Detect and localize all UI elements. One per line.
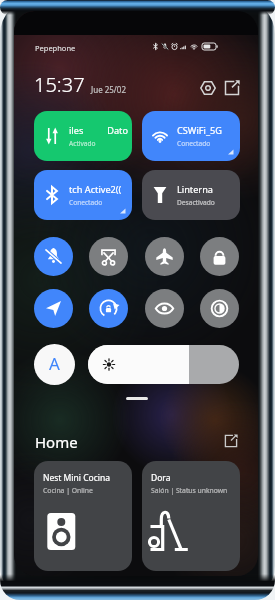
staticText: iles Dato bbox=[69, 124, 128, 137]
staticText: Dora bbox=[151, 472, 171, 484]
staticText: Nest Mini Cocina bbox=[43, 472, 110, 484]
button[interactable]: Settings bbox=[198, 78, 218, 98]
button[interactable]: Edit home bbox=[222, 432, 240, 450]
button[interactable]: Silence bbox=[34, 237, 73, 276]
staticText: Conectado bbox=[69, 198, 103, 207]
staticText: CSWiFi_5G bbox=[177, 124, 222, 137]
button[interactable]: Airplane mode bbox=[145, 237, 184, 276]
button[interactable]: Auto brightness bbox=[34, 344, 75, 385]
staticText: Jue 25/02 bbox=[91, 84, 126, 95]
button[interactable]: tch Active2(( bbox=[34, 170, 132, 220]
button[interactable]: Screenshot bbox=[89, 237, 128, 276]
button[interactable]: iles Dato bbox=[34, 111, 132, 161]
staticText: Cocina | Online bbox=[43, 486, 93, 495]
staticText: tch Active2(( bbox=[69, 183, 122, 196]
staticText: A bbox=[49, 352, 60, 375]
button[interactable]: Auto rotate bbox=[89, 289, 128, 328]
staticText: Desactivado bbox=[177, 198, 215, 207]
button[interactable]: Eye comfort bbox=[145, 289, 184, 328]
staticText: Activado bbox=[69, 139, 96, 148]
button[interactable]: Dora bbox=[142, 461, 240, 571]
button[interactable]: Dark mode bbox=[200, 289, 239, 328]
button[interactable]: Screen lock bbox=[200, 237, 239, 276]
staticText: 15:37 bbox=[34, 71, 85, 98]
button[interactable]: Linterna bbox=[142, 170, 240, 220]
staticText: Linterna bbox=[177, 183, 213, 196]
staticText: Home bbox=[35, 432, 78, 452]
button[interactable]: Edit bbox=[222, 78, 242, 98]
button[interactable]: Location bbox=[34, 289, 73, 328]
button[interactable]: CSWiFi_5G bbox=[142, 111, 240, 161]
button[interactable]: Brightness bbox=[88, 345, 239, 384]
button[interactable]: Nest Mini Cocina bbox=[34, 461, 132, 571]
staticText: Conectado bbox=[177, 139, 211, 148]
staticText: Pepephone bbox=[35, 43, 76, 53]
staticText: Salón | Status unknown bbox=[151, 486, 228, 495]
